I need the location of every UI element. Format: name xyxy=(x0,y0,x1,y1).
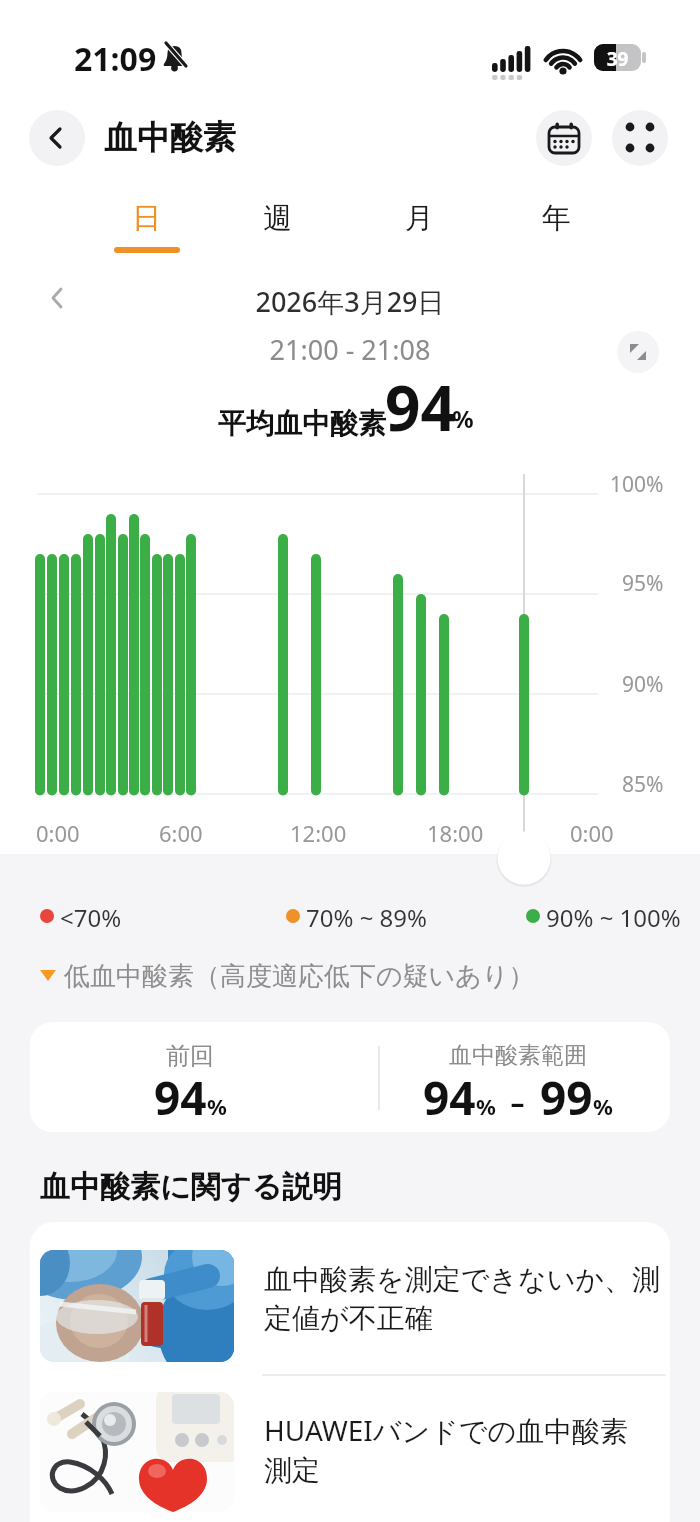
button[interactable]: 前回 xyxy=(30,1022,670,1132)
staticText: 週 xyxy=(263,200,292,237)
staticText: 血中酸素 xyxy=(104,117,236,159)
button[interactable]: 血中酸素を測定できないか、測 定値が不正確 xyxy=(30,1222,670,1375)
button[interactable] xyxy=(29,110,85,166)
staticText: % xyxy=(476,1091,496,1121)
staticText: 95% xyxy=(622,569,664,598)
staticText: 月 xyxy=(405,200,434,237)
staticText: 94 xyxy=(154,1066,207,1129)
staticText: 血中酸素を測定できないか、測 定値が不正確 xyxy=(264,1262,660,1336)
staticText: 70% ~ 89% xyxy=(306,901,428,934)
staticText: 前回 xyxy=(166,1041,214,1071)
staticText: % xyxy=(593,1091,613,1121)
staticText: 21:00 - 21:08 xyxy=(0,331,700,368)
staticText: 100% xyxy=(610,470,664,499)
staticText: 99 xyxy=(540,1066,593,1129)
staticText: 0:00 xyxy=(570,818,614,848)
staticText: % xyxy=(207,1091,227,1121)
staticText: 平均血中酸素 xyxy=(218,406,386,441)
staticText: 血中酸素に関する説明 xyxy=(40,1168,343,1206)
button[interactable] xyxy=(612,110,668,166)
staticText: 21:09 xyxy=(74,37,157,81)
staticText: 血中酸素範囲 xyxy=(449,1041,587,1070)
button[interactable]: 週 xyxy=(233,192,321,244)
staticText: 日 xyxy=(132,200,161,237)
staticText: 85% xyxy=(622,770,664,799)
staticText: 94 xyxy=(423,1066,476,1129)
staticText: HUAWEIバンドでの血中酸素 測定 xyxy=(264,1411,629,1488)
button[interactable]: 月 xyxy=(375,192,463,244)
staticText: <70% xyxy=(60,901,122,934)
staticText: 低血中酸素（高度適応低下の疑いあり） xyxy=(64,960,535,993)
button[interactable] xyxy=(617,331,659,373)
staticText: 年 xyxy=(542,200,571,237)
button[interactable]: 年 xyxy=(512,192,600,244)
button[interactable]: 日 xyxy=(102,192,190,244)
staticText: 6:00 xyxy=(159,818,203,848)
staticText: 90% ~ 100% xyxy=(546,901,681,934)
button[interactable] xyxy=(36,278,80,318)
staticText: 0:00 xyxy=(36,818,80,848)
staticText: 2026年3月29日 xyxy=(0,283,700,320)
button[interactable] xyxy=(536,110,592,166)
staticText: % xyxy=(452,402,474,435)
staticText: 90% xyxy=(622,670,664,699)
staticText: 39 xyxy=(594,46,641,72)
button[interactable]: HUAWEIバンドでの血中酸素 測定 xyxy=(30,1375,670,1522)
staticText: 18:00 xyxy=(427,818,484,848)
staticText: – xyxy=(496,1083,540,1121)
staticText: 12:00 xyxy=(290,818,347,848)
staticText: 94 xyxy=(385,365,456,449)
